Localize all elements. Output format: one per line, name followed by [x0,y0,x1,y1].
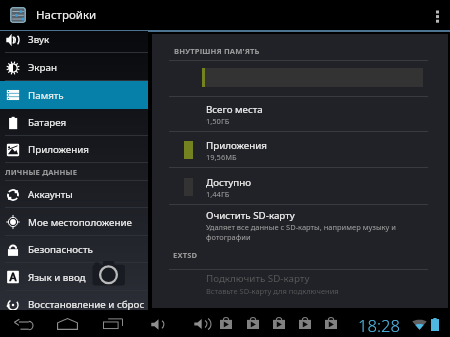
staticText: Настройки [36,7,97,23]
button[interactable]: Подключить SD-карту [152,269,448,308]
button[interactable]: Безопасность [0,236,148,263]
staticText: Очистить SD-карту [206,209,295,222]
staticText: ВНУТРІШНЯ ПАМ'ЯТЬ [174,46,260,56]
staticText: Мое местоположение [28,216,132,229]
staticText: Язык и ввод [28,271,86,284]
staticText: Восстановление и сброс [28,298,145,311]
staticText: Память [28,89,64,102]
button[interactable]: Notification [220,317,232,329]
staticText: Безопасность [28,243,93,256]
staticText: Приложения [206,139,267,152]
staticText: EXTSD [173,250,198,260]
button[interactable]: Экран [0,54,148,81]
staticText: Батарея [28,116,67,129]
staticText: 1,44ГБ [206,189,230,199]
staticText: Приложения [28,143,89,156]
button[interactable]: Приложения [0,136,148,163]
button[interactable]: Notification [247,317,259,329]
button[interactable]: Очистить SD-карту [152,205,448,264]
staticText: Аккаунты [28,188,73,201]
button[interactable]: Восстановление и сброс [0,291,148,318]
button[interactable]: Аккаунты [0,181,148,208]
staticText: Экран [28,61,57,74]
button[interactable]: Notification [325,317,337,329]
button[interactable]: Приложения [152,132,448,168]
staticText: Всего места [206,103,263,116]
button[interactable]: Notification [299,317,311,329]
staticText: Доступно [206,176,252,189]
button[interactable]: Recent apps [103,318,123,329]
staticText: Звук [28,33,50,46]
staticText: ЛИЧНЫЕ ДАННЫЕ [5,167,78,177]
staticText: 19,56МБ [206,152,237,162]
staticText: Вставьте SD-карту для подключения [206,286,339,296]
button[interactable]: Звук [0,26,148,53]
staticText: 18:28 [358,314,400,337]
button[interactable]: Мое местоположение [0,208,148,236]
button[interactable]: Settings [8,5,28,25]
staticText: 1,50ГБ [206,116,230,126]
button[interactable]: Volume down [151,319,164,330]
button[interactable]: Батарея [0,109,148,136]
button[interactable]: Volume up [194,317,210,331]
staticText: Подключить SD-карту [206,272,310,285]
button[interactable]: Память [0,81,148,109]
button[interactable]: Доступно [152,169,448,205]
staticText: Удаляет все данные с SD-карты, например … [206,222,397,242]
button[interactable]: Home [57,318,78,330]
button[interactable]: More options [424,0,450,30]
button[interactable]: Back [14,319,33,330]
button[interactable]: Язык и ввод [0,263,148,291]
button[interactable]: Всего места [152,96,448,132]
button[interactable]: Notification [273,317,285,329]
